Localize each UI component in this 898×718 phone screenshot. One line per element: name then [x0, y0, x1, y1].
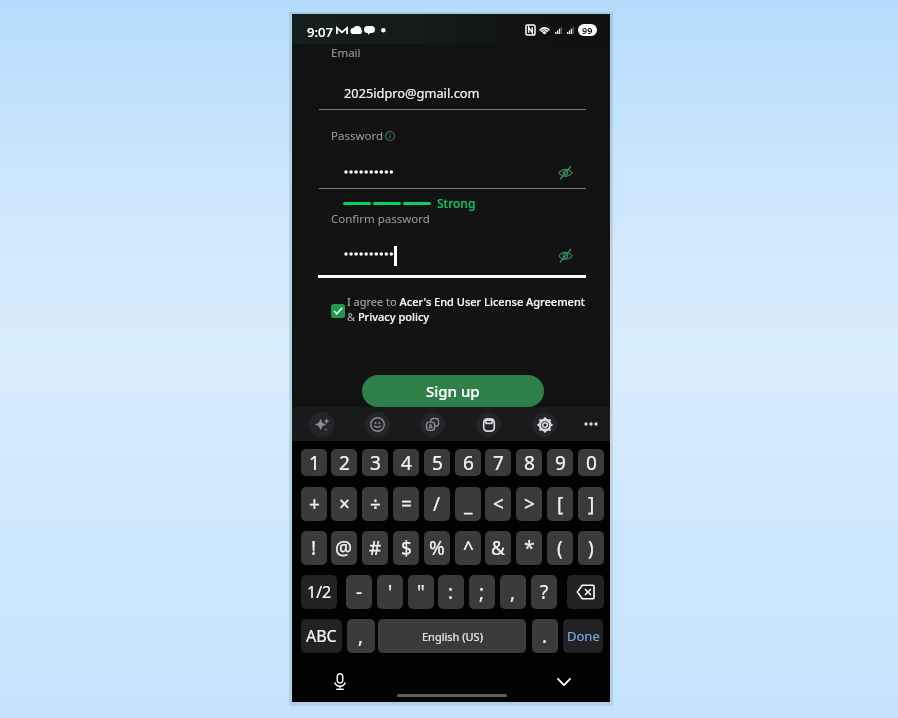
- button[interactable]: English (US): [378, 619, 526, 653]
- staticText: -: [356, 579, 363, 605]
- staticText: (: [557, 535, 563, 561]
- button[interactable]: *: [516, 531, 542, 565]
- button[interactable]: Backspace: [567, 575, 604, 609]
- staticText: Confirm password: [331, 211, 430, 227]
- staticText: +: [309, 491, 320, 517]
- button[interactable]: 7: [485, 449, 511, 476]
- button[interactable]: ×: [331, 487, 357, 521]
- button[interactable]: 1: [301, 449, 327, 476]
- staticText: 2025idpro@gmail.com: [344, 84, 480, 101]
- button[interactable]: [: [547, 487, 573, 521]
- staticText: ×: [339, 491, 350, 517]
- button[interactable]: ^: [455, 531, 481, 565]
- button[interactable]: :: [438, 575, 464, 609]
- button[interactable]: ,: [500, 575, 526, 609]
- button[interactable]: 0: [578, 449, 604, 476]
- button[interactable]: Translate: [420, 412, 445, 437]
- staticText: Sign up: [426, 381, 480, 401]
- button[interactable]: ": [408, 575, 434, 609]
- button[interactable]: Toggle password visibility: [552, 242, 578, 268]
- staticText: /: [433, 491, 441, 517]
- staticText: 9: [555, 450, 566, 476]
- staticText: _: [464, 491, 473, 517]
- button[interactable]: /: [424, 487, 450, 521]
- staticText: Password: [331, 128, 384, 144]
- staticText: ^: [463, 535, 474, 561]
- staticText: .: [542, 623, 548, 649]
- button[interactable]: @: [331, 531, 357, 565]
- button[interactable]: Voice input: [328, 669, 352, 693]
- staticText: 2: [339, 450, 350, 476]
- staticText: English (US): [422, 629, 483, 644]
- button[interactable]: &: [485, 531, 511, 565]
- button[interactable]: Settings: [532, 412, 557, 437]
- button[interactable]: ): [578, 531, 604, 565]
- button[interactable]: 6: [455, 449, 481, 476]
- staticText: Email: [331, 45, 361, 61]
- button[interactable]: Hide keyboard: [553, 671, 575, 693]
- button[interactable]: (: [547, 531, 573, 565]
- button[interactable]: Magic compose: [309, 412, 334, 437]
- button[interactable]: 8: [516, 449, 542, 476]
- button[interactable]: I agree to Acer's End User License Agree…: [347, 294, 595, 324]
- staticText: >: [524, 491, 535, 517]
- staticText: ): [588, 535, 594, 561]
- button[interactable]: ;: [469, 575, 495, 609]
- button[interactable]: #: [362, 531, 388, 565]
- button[interactable]: 5: [424, 449, 450, 476]
- staticText: ': [388, 579, 393, 605]
- button[interactable]: 3: [362, 449, 388, 476]
- button[interactable]: ?: [531, 575, 557, 609]
- button[interactable]: 4: [393, 449, 419, 476]
- button[interactable]: =: [393, 487, 419, 521]
- button[interactable]: $: [393, 531, 419, 565]
- button[interactable]: ,: [347, 619, 375, 653]
- staticText: 4: [401, 450, 412, 476]
- button[interactable]: Toggle password visibility: [552, 159, 578, 185]
- button[interactable]: Sign up: [362, 375, 544, 407]
- button[interactable]: <: [485, 487, 511, 521]
- staticText: !: [311, 535, 317, 561]
- button[interactable]: Done: [563, 619, 603, 653]
- button[interactable]: %: [424, 531, 450, 565]
- button[interactable]: ÷: [362, 487, 388, 521]
- staticText: &: [491, 535, 505, 561]
- staticText: 6: [463, 450, 474, 476]
- button[interactable]: >: [516, 487, 542, 521]
- staticText: Strong: [437, 195, 476, 211]
- staticText: ]: [588, 491, 595, 517]
- button[interactable]: !: [301, 531, 327, 565]
- staticText: *: [524, 535, 535, 561]
- button[interactable]: ]: [578, 487, 604, 521]
- staticText: 3: [370, 450, 381, 476]
- button[interactable]: 1/2: [301, 575, 337, 609]
- staticText: =: [401, 491, 412, 517]
- staticText: ;: [479, 579, 485, 605]
- button[interactable]: I agree checkbox: [331, 304, 345, 318]
- button[interactable]: More options: [578, 411, 604, 437]
- staticText: 5: [432, 450, 443, 476]
- button[interactable]: _: [455, 487, 481, 521]
- staticText: 9:07: [307, 23, 333, 41]
- staticText: ABC: [306, 625, 337, 647]
- staticText: :: [448, 579, 454, 605]
- staticText: ?: [540, 579, 549, 605]
- staticText: 7: [493, 450, 504, 476]
- staticText: ÷: [370, 491, 381, 517]
- staticText: ,: [358, 623, 364, 649]
- button[interactable]: +: [301, 487, 327, 521]
- button[interactable]: ABC: [301, 619, 342, 653]
- staticText: @: [335, 535, 353, 561]
- button[interactable]: ': [377, 575, 403, 609]
- button[interactable]: Clipboard: [476, 412, 501, 437]
- button[interactable]: 2: [331, 449, 357, 476]
- button[interactable]: Emoji: [365, 412, 390, 437]
- staticText: ,: [510, 579, 516, 605]
- button[interactable]: -: [346, 575, 372, 609]
- button[interactable]: .: [532, 619, 558, 653]
- staticText: 1: [309, 450, 320, 476]
- staticText: 0: [586, 450, 597, 476]
- staticText: ": [417, 579, 425, 605]
- button[interactable]: 9: [547, 449, 573, 476]
- staticText: [: [557, 491, 564, 517]
